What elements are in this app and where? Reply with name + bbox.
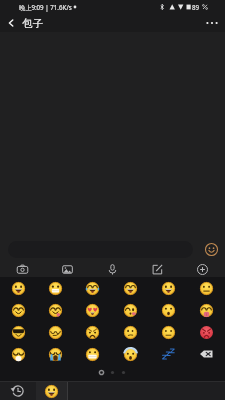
button[interactable]: Emoji (149, 343, 187, 365)
button[interactable]: Emoji (111, 299, 149, 321)
staticText: 晚上9:09 | 71.6K/s (19, 3, 72, 11)
button[interactable]: Emoji (187, 321, 225, 343)
button[interactable]: Emoji (74, 277, 111, 299)
button[interactable]: Emoji (74, 343, 111, 365)
button[interactable]: Emoji (149, 277, 187, 299)
button[interactable]: Recently used (0, 382, 36, 400)
button[interactable]: Emoji (74, 321, 111, 343)
button[interactable]: Draw (135, 261, 180, 277)
button[interactable]: Emoji (0, 343, 37, 365)
staticText: 包子 (22, 17, 43, 30)
button[interactable]: Emoji (0, 277, 37, 299)
button[interactable]: Emoji (37, 277, 74, 299)
button[interactable]: Emoji (37, 299, 74, 321)
button[interactable]: Emoji (111, 277, 149, 299)
button[interactable]: Emoji (187, 299, 225, 321)
button[interactable]: Emoji (74, 299, 111, 321)
button[interactable]: Emoji (37, 343, 74, 365)
button[interactable]: Voice message (90, 261, 135, 277)
button[interactable]: Gallery (45, 261, 90, 277)
button[interactable]: Smileys (36, 382, 67, 400)
button[interactable]: Emoji (0, 321, 37, 343)
button[interactable]: Backspace (187, 343, 225, 365)
button[interactable]: Camera (0, 261, 45, 277)
button[interactable]: Emoji (202, 240, 220, 258)
button[interactable]: Emoji (0, 299, 37, 321)
button[interactable]: Emoji (187, 277, 225, 299)
button[interactable]: Emoji (149, 321, 187, 343)
button[interactable]: Back (0, 14, 22, 32)
button[interactable]: Emoji (149, 299, 187, 321)
button[interactable]: More options (199, 14, 225, 32)
staticText: 89 (192, 3, 200, 11)
button[interactable]: Emoji (37, 321, 74, 343)
button[interactable]: Emoji (111, 343, 149, 365)
button[interactable]: More (180, 261, 225, 277)
button[interactable]: Emoji (111, 321, 149, 343)
